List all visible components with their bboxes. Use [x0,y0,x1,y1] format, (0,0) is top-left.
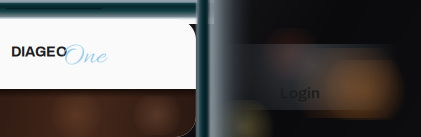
staticText: DIAGEO [11,44,67,59]
staticText: Login [280,85,320,101]
staticText: One [62,38,106,76]
